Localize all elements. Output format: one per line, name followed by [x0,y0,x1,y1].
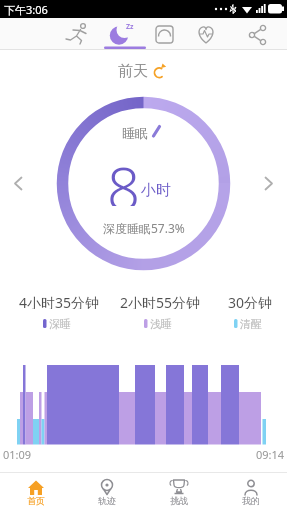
staticText: 30分钟 [228,293,273,309]
button[interactable] [105,18,135,49]
staticText: 2小时55分钟 [120,293,201,309]
staticText: 01:09 [3,447,32,462]
button[interactable]: 前天 [103,60,183,84]
staticText: 挑战 [170,495,188,506]
staticText: 轨迹 [98,495,116,506]
staticText: 8 [107,148,141,206]
staticText: 首页 [27,495,45,506]
button[interactable]: 首页 [0,473,71,512]
staticText: 下午3:06 [4,2,48,17]
button[interactable] [251,170,287,198]
staticText: 4小时35分钟 [19,293,100,309]
button[interactable]: 我的 [215,473,287,512]
staticText: 睡眠 [122,125,148,141]
staticText: 09:14 [256,447,285,462]
staticText: 我的 [242,495,260,506]
button[interactable] [62,18,92,49]
button[interactable] [0,170,36,198]
staticText: 小时 [141,181,171,200]
staticText: 清醒 [240,317,262,331]
staticText: 深睡 [49,317,71,331]
button[interactable]: 轨迹 [71,473,143,512]
button[interactable] [150,18,180,49]
button[interactable] [244,18,274,49]
staticText: 深度睡眠57.3% [103,220,185,236]
button[interactable] [192,18,222,49]
staticText: 前天 [118,62,148,81]
staticText: Zz [126,22,134,32]
button[interactable]: 挑战 [143,473,215,512]
staticText: 浅睡 [150,317,172,331]
